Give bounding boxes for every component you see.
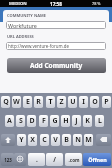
button[interactable]: P	[102, 96, 111, 108]
staticText: E	[26, 97, 30, 107]
staticText: Y	[19, 135, 24, 145]
button[interactable]: Z	[57, 96, 66, 108]
staticText: Z	[59, 97, 64, 107]
button[interactable]: Backspace	[96, 134, 111, 146]
staticText: I	[82, 97, 85, 107]
staticText: A	[7, 116, 12, 126]
button[interactable]: /	[46, 153, 63, 166]
button[interactable]: S	[16, 115, 25, 127]
button[interactable]: O	[90, 96, 99, 108]
staticText: .com	[68, 157, 80, 163]
button[interactable]: E	[23, 96, 32, 108]
button[interactable]: T	[46, 96, 55, 108]
button[interactable]: B	[62, 134, 71, 146]
staticText: 123	[4, 157, 12, 163]
staticText: F	[42, 116, 46, 126]
staticText: MEDION	[9, 1, 27, 7]
staticText: .	[36, 155, 38, 164]
staticText: http://www.venture-forum.de	[8, 43, 69, 49]
staticText: X	[30, 135, 35, 145]
staticText: O	[92, 97, 98, 107]
button[interactable]: A	[5, 115, 14, 127]
button[interactable]: K	[83, 115, 92, 127]
button[interactable]: Add Community	[7, 58, 106, 73]
staticText: W	[13, 97, 20, 107]
button[interactable]: Workfuture	[6, 21, 106, 29]
button[interactable]: Y	[17, 134, 26, 146]
staticText: URL ADDRESS	[7, 34, 34, 39]
button[interactable]: I	[79, 96, 88, 108]
button[interactable]: Öffnen	[83, 153, 111, 166]
button[interactable]: Q	[1, 96, 10, 108]
staticText: M	[85, 135, 92, 145]
button[interactable]: 123	[1, 153, 14, 166]
staticText: COMMUNITY NAME	[7, 13, 46, 18]
staticText: Q	[3, 97, 9, 107]
button[interactable]: .	[28, 153, 45, 166]
staticText: L	[98, 116, 102, 126]
staticText: 78 %	[92, 1, 101, 6]
button[interactable]: Change keyboard	[14, 153, 26, 166]
button[interactable]: M	[84, 134, 93, 146]
staticText: U	[70, 97, 76, 107]
staticText: R	[36, 97, 41, 107]
button[interactable]: http://www.venture-forum.de	[6, 42, 106, 50]
button[interactable]: C	[40, 134, 49, 146]
staticText: D	[29, 116, 35, 126]
staticText: 17:58	[50, 1, 62, 7]
staticText: P	[104, 97, 109, 107]
staticText: G	[52, 116, 58, 126]
staticText: H	[63, 116, 69, 126]
staticText: T	[48, 97, 53, 107]
staticText: /	[53, 155, 56, 164]
staticText: V	[53, 135, 58, 145]
staticText: Workfuture	[8, 22, 37, 29]
button[interactable]: R	[34, 96, 43, 108]
button[interactable]: D	[27, 115, 36, 127]
button[interactable]: L	[95, 115, 104, 127]
button[interactable]: N	[73, 134, 82, 146]
staticText: S	[19, 116, 23, 126]
button[interactable]: W	[12, 96, 21, 108]
button[interactable]: .com	[65, 153, 82, 166]
button[interactable]: V	[51, 134, 60, 146]
staticText: K	[85, 116, 90, 126]
button[interactable]: J	[72, 115, 81, 127]
button[interactable]: Shift	[1, 134, 15, 146]
staticText: N	[75, 135, 81, 145]
staticText: B	[64, 135, 69, 145]
button[interactable]: F	[39, 115, 48, 127]
staticText: J	[75, 116, 78, 126]
staticText: Öffnen	[88, 156, 107, 163]
button[interactable]: G	[50, 115, 59, 127]
staticText: C	[42, 135, 47, 145]
button[interactable]: U	[68, 96, 77, 108]
button[interactable]: H	[61, 115, 70, 127]
button[interactable]: X	[28, 134, 37, 146]
staticText: Add Community	[30, 61, 83, 70]
